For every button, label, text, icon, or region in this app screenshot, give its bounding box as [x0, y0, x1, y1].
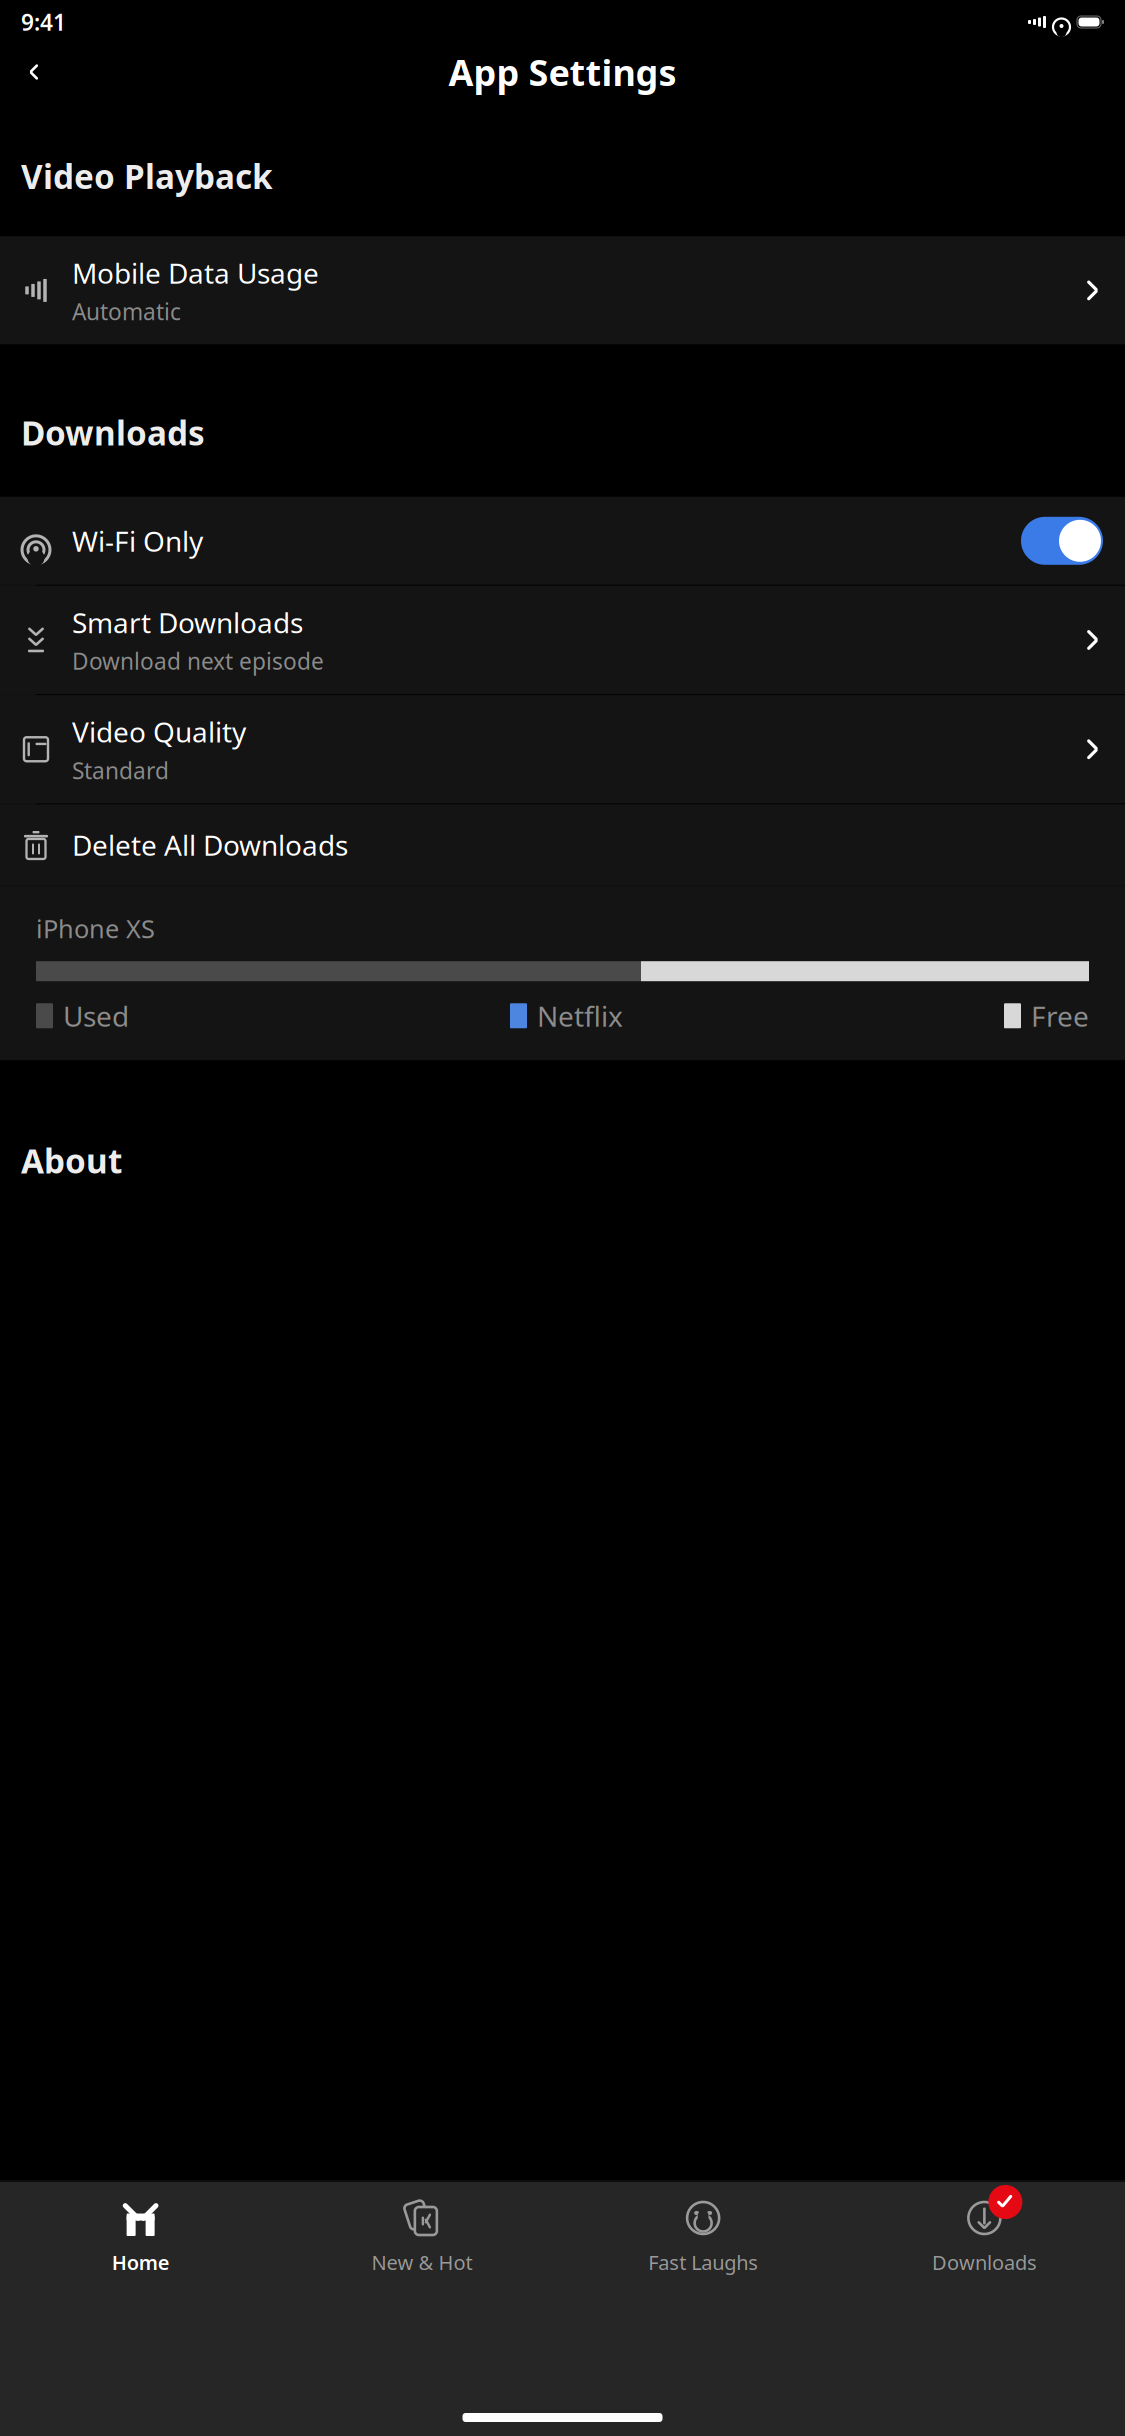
- staticText: Netflix: [537, 997, 623, 1034]
- button[interactable]: Wi-Fi Only: [0, 497, 1125, 585]
- staticText: Download next episode: [72, 646, 324, 676]
- button[interactable]: Downloads: [844, 2196, 1125, 2276]
- staticText: Used: [63, 997, 129, 1034]
- button[interactable]: Mobile Data Usage: [0, 236, 1125, 345]
- staticText: Video Playback: [21, 154, 273, 198]
- staticText: Automatic: [72, 296, 181, 326]
- staticText: New & Hot: [371, 2249, 472, 2276]
- staticText: Downloads: [932, 2249, 1037, 2276]
- staticText: Home: [112, 2249, 170, 2276]
- staticText: Standard: [72, 755, 169, 785]
- staticText: Wi-Fi Only: [72, 522, 203, 559]
- staticText: Fast Laughs: [648, 2249, 758, 2276]
- button[interactable]: Video Quality: [0, 695, 1125, 803]
- staticText: Free: [1031, 997, 1089, 1034]
- staticText: Downloads: [21, 410, 205, 455]
- button[interactable]: New & Hot: [281, 2196, 562, 2276]
- button[interactable]: Home: [0, 2196, 281, 2276]
- staticText: Mobile Data Usage: [72, 254, 319, 291]
- staticText: iPhone XS: [36, 912, 155, 945]
- staticText: Delete All Downloads: [72, 826, 348, 864]
- button[interactable]: Fast Laughs: [562, 2196, 844, 2276]
- staticText: Video Quality: [72, 713, 246, 750]
- button[interactable]: Smart Downloads: [0, 586, 1125, 694]
- staticText: 9:41: [21, 7, 66, 37]
- button[interactable]: Back: [12, 50, 56, 94]
- staticText: Smart Downloads: [72, 604, 303, 641]
- staticText: About: [21, 1138, 122, 1183]
- button[interactable]: Delete All Downloads: [0, 804, 1125, 886]
- staticText: App Settings: [448, 48, 676, 96]
